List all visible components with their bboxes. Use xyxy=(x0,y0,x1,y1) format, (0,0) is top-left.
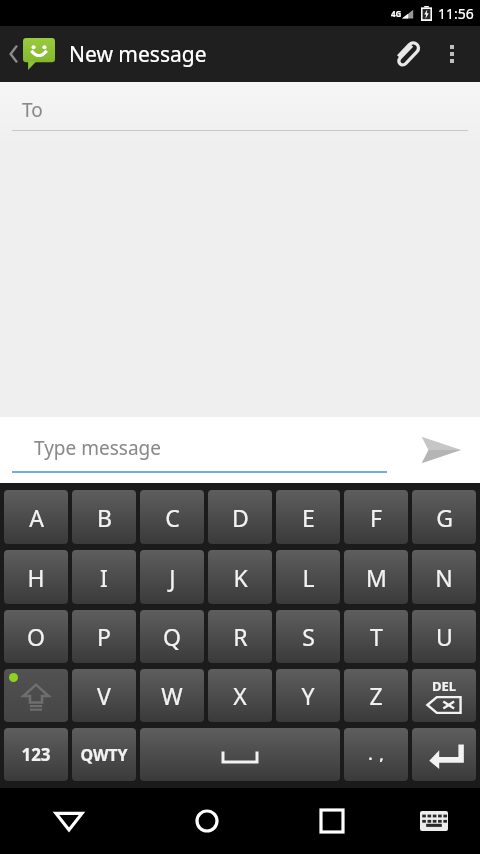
staticText: Type message xyxy=(34,435,161,461)
button[interactable]: X xyxy=(208,669,272,722)
button[interactable]: Y xyxy=(276,669,340,722)
button[interactable]: Space xyxy=(140,728,340,781)
staticText: P xyxy=(97,621,111,652)
button[interactable]: R xyxy=(208,610,272,663)
staticText: J xyxy=(169,562,176,593)
staticText: M xyxy=(366,562,387,593)
button[interactable]: D xyxy=(208,490,272,544)
button[interactable]: N xyxy=(412,550,476,604)
staticText: 123 xyxy=(21,743,51,766)
staticText: T xyxy=(370,621,383,652)
button[interactable]: B xyxy=(72,490,136,544)
button[interactable]: More options xyxy=(430,32,474,76)
staticText: L xyxy=(302,562,315,593)
button[interactable]: C xyxy=(140,490,204,544)
staticText: QWTY xyxy=(80,744,128,766)
button[interactable]: . , xyxy=(344,728,408,781)
button[interactable]: S xyxy=(276,610,340,663)
button[interactable]: U xyxy=(412,610,476,663)
button[interactable]: To xyxy=(0,82,480,144)
button[interactable]: Switch keyboard xyxy=(388,788,480,854)
button[interactable]: 123 xyxy=(4,728,68,781)
button[interactable]: G xyxy=(412,490,476,544)
button[interactable]: P xyxy=(72,610,136,663)
button[interactable]: H xyxy=(4,550,68,604)
staticText: Q xyxy=(163,621,181,652)
staticText: E xyxy=(302,502,315,533)
button[interactable]: E xyxy=(276,490,340,544)
staticText: Y xyxy=(301,680,315,711)
staticText: W xyxy=(161,680,183,711)
button[interactable]: Enter xyxy=(412,728,476,781)
button[interactable]: I xyxy=(72,550,136,604)
button[interactable]: F xyxy=(344,490,408,544)
staticText: 4G xyxy=(391,8,402,19)
button[interactable]: J xyxy=(140,550,204,604)
button[interactable]: Q xyxy=(140,610,204,663)
staticText: O xyxy=(27,621,45,652)
staticText: G xyxy=(436,502,453,533)
button[interactable]: Home xyxy=(138,788,276,854)
button[interactable]: A xyxy=(4,490,68,544)
staticText: Z xyxy=(369,680,383,711)
staticText: 11:56 xyxy=(438,4,474,23)
button[interactable]: W xyxy=(140,669,204,722)
button[interactable]: Back xyxy=(4,38,59,70)
button[interactable]: Delete xyxy=(412,669,476,722)
button[interactable]: Recents xyxy=(276,788,388,854)
staticText: B xyxy=(97,502,112,533)
staticText: New message xyxy=(69,40,207,69)
staticText: A xyxy=(29,502,44,533)
staticText: S xyxy=(302,621,315,652)
staticText: DEL xyxy=(432,677,457,695)
staticText: . , xyxy=(368,745,384,764)
staticText: D xyxy=(232,502,249,533)
staticText: N xyxy=(435,562,453,593)
staticText: F xyxy=(370,502,382,533)
button[interactable]: O xyxy=(4,610,68,663)
button[interactable]: T xyxy=(344,610,408,663)
button[interactable]: Attach xyxy=(382,30,430,78)
staticText: I xyxy=(100,562,108,593)
staticText: H xyxy=(27,562,45,593)
button[interactable]: Type message xyxy=(12,417,387,483)
button[interactable]: Z xyxy=(344,669,408,722)
staticText: V xyxy=(97,680,111,711)
staticText: K xyxy=(233,562,248,593)
button[interactable]: K xyxy=(208,550,272,604)
staticText: X xyxy=(233,680,247,711)
button[interactable]: Hide keyboard xyxy=(0,788,138,854)
button[interactable]: M xyxy=(344,550,408,604)
button[interactable]: L xyxy=(276,550,340,604)
button[interactable]: QWTY xyxy=(72,728,136,781)
staticText: R xyxy=(233,621,248,652)
staticText: C xyxy=(165,502,180,533)
staticText: To xyxy=(22,97,43,123)
button[interactable]: Send xyxy=(410,419,472,481)
staticText: U xyxy=(436,621,453,652)
button[interactable]: V xyxy=(72,669,136,722)
button[interactable] xyxy=(4,669,68,722)
